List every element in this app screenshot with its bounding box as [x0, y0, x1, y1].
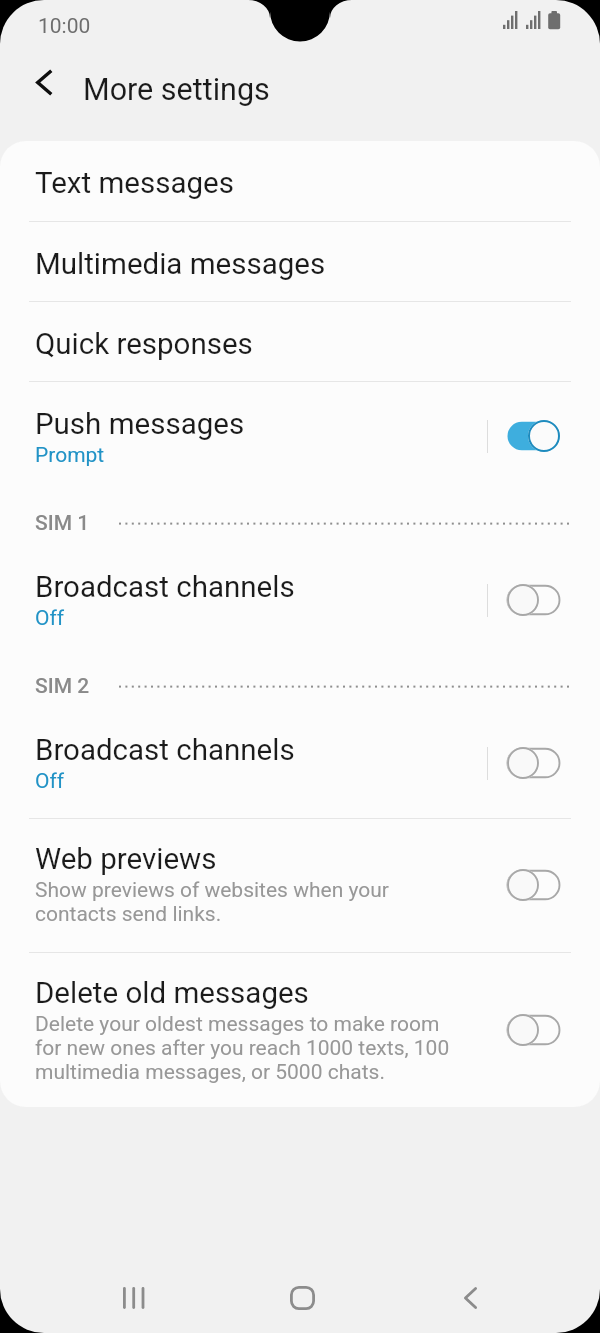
button[interactable]: Multimedia messages: [0, 222, 600, 301]
button[interactable]: Push messages: [0, 382, 600, 482]
staticText: Push messages: [35, 407, 465, 442]
staticText: Broadcast channels: [35, 733, 465, 768]
button[interactable]: Delete old messages: [0, 953, 600, 1107]
button[interactable]: Broadcast channels: [0, 708, 600, 818]
staticText: Off: [35, 769, 465, 794]
button[interactable]: Web previews: [0, 819, 600, 952]
staticText: Off: [35, 606, 465, 631]
staticText: Web previews: [35, 842, 475, 877]
button[interactable]: Broadcast channels off: [506, 578, 560, 622]
button[interactable]: Back: [440, 1268, 500, 1328]
staticText: More settings: [83, 72, 270, 108]
button[interactable]: Recent apps: [104, 1268, 164, 1328]
staticText: Multimedia messages: [35, 247, 465, 282]
staticText: Delete your oldest messages to make room…: [35, 1012, 485, 1084]
button[interactable]: Navigate up: [20, 54, 69, 110]
staticText: Broadcast channels: [35, 570, 465, 605]
staticText: SIM 2: [35, 674, 90, 699]
button[interactable]: Push messages on: [506, 414, 560, 458]
button[interactable]: Quick responses: [0, 302, 600, 381]
staticText: Text messages: [35, 166, 465, 201]
button[interactable]: Broadcast channels off: [506, 741, 560, 785]
staticText: Prompt: [35, 443, 465, 468]
staticText: Delete old messages: [35, 976, 485, 1011]
button[interactable]: Web previews off: [506, 863, 560, 907]
staticText: Quick responses: [35, 327, 465, 362]
button[interactable]: Broadcast channels: [0, 545, 600, 645]
button[interactable]: Home: [272, 1268, 332, 1328]
button[interactable]: Delete old messages off: [506, 1008, 560, 1052]
staticText: SIM 1: [35, 511, 90, 536]
staticText: Show previews of websites when your cont…: [35, 878, 475, 926]
staticText: 10:00: [38, 14, 91, 39]
button[interactable]: Text messages: [0, 141, 600, 221]
